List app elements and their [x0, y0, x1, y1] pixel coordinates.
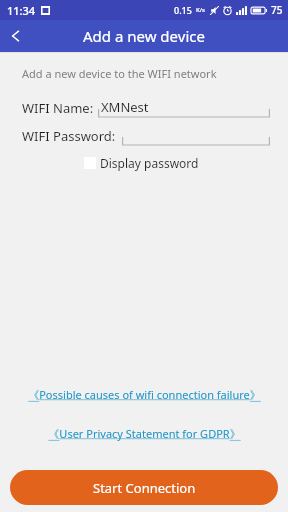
- staticText: 11:34: [7, 3, 36, 18]
- staticText: K/s: [196, 6, 206, 14]
- staticText: Display password: [100, 155, 199, 171]
- button[interactable]: 《Possible causes of wifi connection fail…: [0, 387, 288, 402]
- button[interactable]: Display password: [84, 155, 199, 171]
- staticText: 《Possible causes of wifi connection fail…: [28, 387, 261, 402]
- staticText: 《User Privacy Statement for GDPR》: [48, 426, 241, 441]
- staticText: 75: [271, 3, 283, 17]
- button[interactable]: Back: [0, 20, 32, 52]
- staticText: XMNest: [101, 98, 149, 116]
- button[interactable]: 《User Privacy Statement for GDPR》: [0, 426, 288, 441]
- staticText: Start Connection: [93, 479, 196, 497]
- button[interactable]: XMNest: [98, 98, 270, 118]
- staticText: 0.15: [174, 4, 192, 16]
- staticText: WIFI Password:: [22, 127, 122, 145]
- staticText: WIFI Name:: [22, 99, 98, 117]
- staticText: Add a new device: [83, 26, 205, 46]
- staticText: Add a new device to the WIFI network: [22, 66, 217, 81]
- button[interactable]: Start Connection: [10, 470, 278, 505]
- button[interactable]: [122, 126, 270, 146]
